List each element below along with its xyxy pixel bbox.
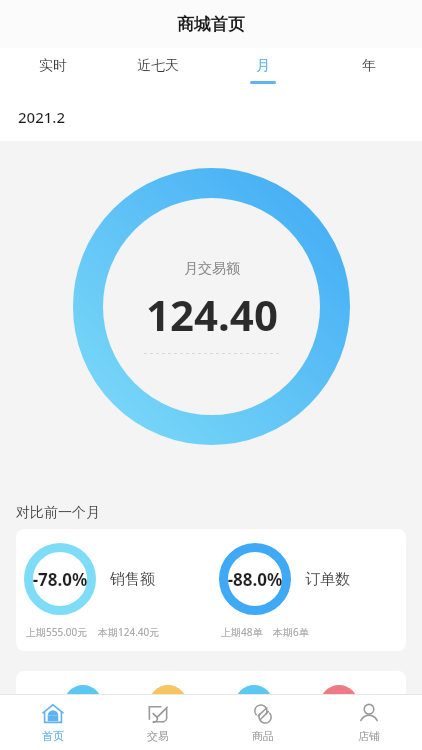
staticText: -78.0% [24,568,96,591]
staticText: 店铺 [358,729,380,743]
staticText: -88.0% [219,568,291,591]
button[interactable]: 商品 [210,695,316,750]
button[interactable]: 年 [316,48,422,93]
staticText: 商城首页 [177,14,245,35]
button[interactable]: 实时 [0,48,105,93]
button[interactable]: 近七天 [105,48,210,93]
staticText: 实时 [39,57,67,75]
staticText: 2021.2 [18,107,65,127]
button[interactable]: 月 [210,48,316,93]
staticText: 上期48单 [221,625,263,639]
staticText: 首页 [42,729,64,743]
staticText: 月交易额 [184,260,240,278]
button[interactable]: 店铺 [316,695,422,750]
button[interactable]: 首页 [0,695,105,750]
button[interactable] [16,671,406,750]
staticText: 交易 [147,729,169,743]
staticText: 月 [256,57,270,75]
staticText: 年 [362,57,376,75]
staticText: 124.40 [146,286,278,343]
button[interactable]: 交易 [105,695,210,750]
staticText: 本期6单 [273,625,309,639]
staticText: 对比前一个月 [16,504,100,522]
staticText: 商品 [252,729,274,743]
staticText: 销售额 [110,570,155,589]
staticText: 本期124.40元 [98,625,160,639]
staticText: 上期555.00元 [26,625,88,639]
button[interactable]: -78.0% [16,529,406,651]
staticText: 订单数 [305,570,350,589]
staticText: 近七天 [137,57,179,75]
